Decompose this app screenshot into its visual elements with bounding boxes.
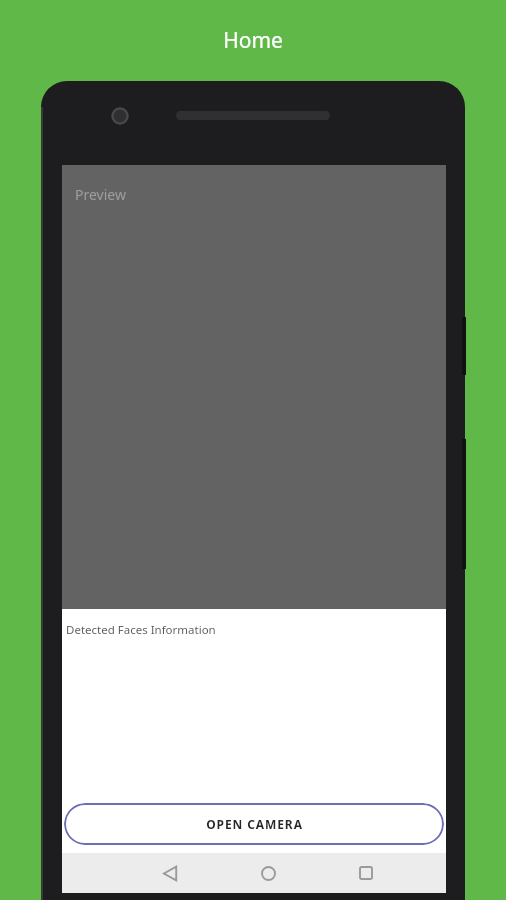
button[interactable]: Recent apps: [348, 855, 384, 891]
staticText: Home: [223, 26, 283, 55]
staticText: OPEN CAMERA: [206, 816, 303, 832]
staticText: Preview: [75, 185, 126, 204]
button[interactable]: OPEN CAMERA: [64, 803, 444, 845]
button[interactable]: Home: [250, 855, 286, 891]
button[interactable]: Back: [152, 855, 188, 891]
staticText: Detected Faces Information: [66, 622, 216, 638]
